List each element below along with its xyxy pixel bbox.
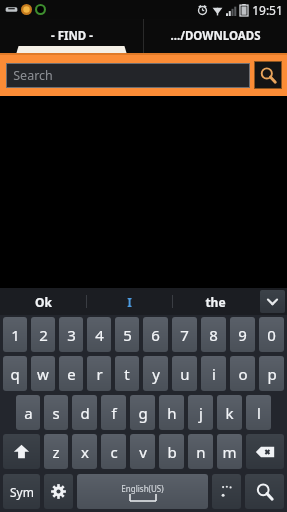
button[interactable]: I — [87, 288, 172, 315]
staticText: q — [10, 364, 20, 384]
staticText: 1 — [11, 325, 20, 345]
button[interactable]: - FIND - — [0, 19, 143, 53]
button[interactable]: d — [72, 395, 97, 430]
button[interactable]: Search — [245, 474, 284, 509]
staticText: x — [81, 442, 89, 462]
button[interactable]: g — [130, 395, 155, 430]
staticText: b — [167, 442, 177, 462]
button[interactable]: 8 — [201, 317, 226, 352]
staticText: 4 — [95, 325, 104, 345]
button[interactable]: the — [173, 288, 258, 315]
button[interactable]: 3 — [59, 317, 83, 352]
button[interactable]: Search — [7, 64, 249, 87]
staticText: o — [238, 364, 248, 384]
staticText: r — [96, 364, 103, 384]
staticText: n — [196, 442, 206, 462]
staticText: v — [139, 442, 147, 462]
button[interactable]: o — [230, 356, 255, 391]
staticText: d — [80, 403, 90, 423]
button[interactable]: 5 — [115, 317, 139, 352]
button[interactable]: .../DOWNLOADS — [144, 19, 287, 53]
button[interactable]: r — [87, 356, 111, 391]
staticText: - FIND - — [51, 28, 93, 44]
button[interactable]: 7 — [172, 317, 197, 352]
button[interactable]: x — [72, 434, 97, 469]
staticText: Ok — [35, 294, 52, 310]
button[interactable]: 1 — [3, 317, 27, 352]
button[interactable]: 0 — [259, 317, 284, 352]
button[interactable]: w — [31, 356, 55, 391]
staticText: .../DOWNLOADS — [170, 28, 261, 44]
staticText: f — [111, 403, 117, 423]
button[interactable]: e — [59, 356, 83, 391]
button[interactable]: t — [115, 356, 139, 391]
staticText: i — [212, 364, 216, 384]
button[interactable]: Hide suggestions — [260, 290, 285, 313]
button[interactable]: 4 — [87, 317, 111, 352]
button[interactable]: l — [246, 395, 271, 430]
staticText: s — [52, 403, 60, 423]
staticText: z — [52, 442, 60, 462]
button[interactable]: English(US) — [77, 474, 208, 509]
button[interactable]: m — [217, 434, 242, 469]
button[interactable]: v — [130, 434, 155, 469]
staticText: Search — [13, 67, 53, 84]
staticText: u — [180, 364, 190, 384]
button[interactable]: h — [159, 395, 184, 430]
staticText: 19:51 — [252, 2, 283, 18]
staticText: l — [257, 403, 261, 423]
button[interactable]: n — [188, 434, 213, 469]
button[interactable]: z — [44, 434, 68, 469]
button[interactable]: Backspace — [246, 434, 284, 469]
button[interactable]: b — [159, 434, 184, 469]
button[interactable]: p — [259, 356, 284, 391]
staticText: 0 — [267, 325, 276, 345]
staticText: m — [222, 442, 237, 462]
button[interactable]: c — [101, 434, 126, 469]
button[interactable]: j — [188, 395, 213, 430]
staticText: 6 — [151, 325, 160, 345]
staticText: 2 — [39, 325, 48, 345]
staticText: 5 — [123, 325, 132, 345]
staticText: 3 — [67, 325, 76, 345]
staticText: 8 — [209, 325, 218, 345]
button[interactable]: s — [44, 395, 68, 430]
button[interactable]: 9 — [230, 317, 255, 352]
button[interactable]: 2 — [31, 317, 55, 352]
staticText: 7 — [180, 325, 189, 345]
staticText: w — [37, 364, 49, 384]
button[interactable]: y — [143, 356, 168, 391]
staticText: Sym — [10, 484, 34, 500]
staticText: 9 — [238, 325, 247, 345]
staticText: g — [138, 403, 148, 423]
staticText: j — [199, 403, 203, 423]
staticText: e — [67, 364, 76, 384]
button[interactable]: u — [172, 356, 197, 391]
button[interactable]: Shift — [3, 434, 40, 469]
button[interactable]: Search — [255, 62, 281, 88]
button[interactable]: i — [201, 356, 226, 391]
button[interactable]: 6 — [143, 317, 168, 352]
staticText: t — [124, 364, 130, 384]
staticText: p — [267, 364, 277, 384]
button[interactable]: f — [101, 395, 126, 430]
button[interactable]: a — [16, 395, 40, 430]
button[interactable]: Ok — [0, 288, 86, 315]
button[interactable]: Settings — [44, 474, 73, 509]
staticText: h — [167, 403, 177, 423]
staticText: a — [24, 403, 33, 423]
staticText: y — [152, 364, 160, 384]
button[interactable]: q — [3, 356, 27, 391]
staticText: k — [225, 403, 234, 423]
button[interactable]: Symbols — [3, 474, 40, 509]
staticText: the — [205, 294, 226, 310]
button[interactable]: k — [217, 395, 242, 430]
staticText: English(US) — [121, 483, 164, 494]
staticText: I — [127, 294, 132, 310]
staticText: c — [110, 442, 118, 462]
button[interactable]: Punctuation — [212, 474, 241, 509]
